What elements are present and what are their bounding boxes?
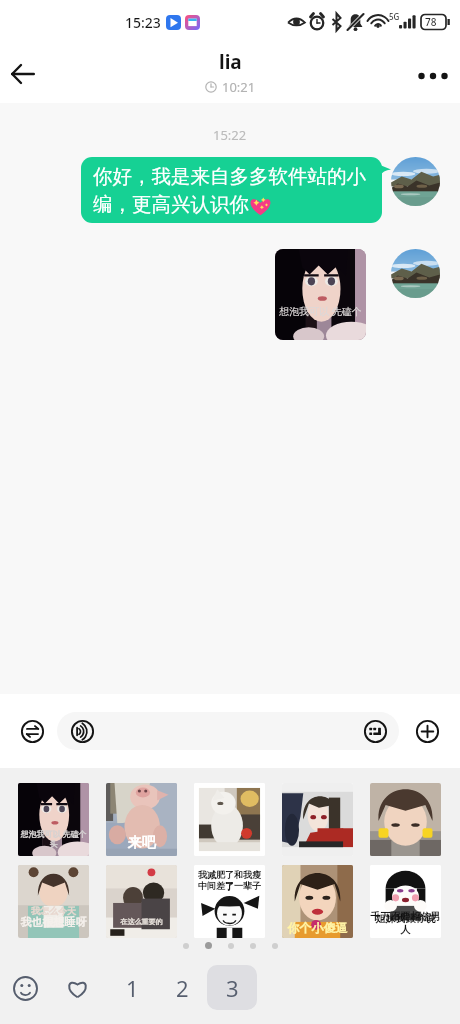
- staticText: [370, 845, 441, 856]
- button[interactable]: 在这么重要的: [106, 865, 177, 938]
- staticText: 3: [226, 973, 239, 1003]
- button[interactable]: 来吧: [106, 783, 177, 856]
- staticText: 15:23: [125, 13, 161, 32]
- button[interactable]: 我怎么今天: [18, 865, 89, 938]
- staticText: 想泡我可以 先磕个头: [18, 828, 89, 849]
- staticText: 我怎么今天: [18, 905, 89, 916]
- staticText: 5G: [389, 11, 400, 22]
- button[interactable]: Favorites tab: [55, 966, 99, 1010]
- button[interactable]: [370, 783, 441, 856]
- staticText: 我减肥了和我瘦了: [194, 869, 265, 893]
- staticText: 你个小傻逼: [282, 920, 353, 935]
- staticText: 1: [126, 973, 139, 1003]
- button[interactable]: 想泡我可以 先磕个头: [275, 249, 366, 340]
- button[interactable]: Back: [0, 51, 46, 97]
- button[interactable]: Emoji tab: [3, 966, 47, 1010]
- button[interactable]: [282, 783, 353, 856]
- staticText: lia: [219, 49, 242, 75]
- staticText: 姐妹我跟你说: [370, 912, 441, 925]
- button[interactable]: [57, 712, 399, 750]
- staticText: 78: [425, 15, 437, 29]
- button[interactable]: 姐妹我跟你说: [370, 865, 441, 938]
- button[interactable]: 1: [107, 965, 157, 1010]
- button[interactable]: 你个小傻逼: [282, 865, 353, 938]
- button[interactable]: 3: [207, 965, 257, 1010]
- button[interactable]: [391, 249, 440, 298]
- staticText: 编，更高兴认识你: [93, 192, 249, 217]
- button[interactable]: 你好，我是来自多多软件站的小: [81, 157, 382, 223]
- button[interactable]: More options: [409, 50, 457, 98]
- staticText: 想泡我可以 先磕个头: [275, 304, 366, 318]
- button[interactable]: Switch input mode: [16, 715, 48, 747]
- staticText: 你好，我是来自多多软件站的小: [93, 164, 366, 189]
- staticText: 15:22: [213, 126, 247, 144]
- button[interactable]: [194, 783, 265, 856]
- button[interactable]: 想泡我可以 先磕个头: [18, 783, 89, 856]
- staticText: 在这么重要的: [106, 917, 177, 926]
- button[interactable]: Emoji: [359, 715, 391, 747]
- staticText: 来吧: [106, 834, 177, 852]
- button[interactable]: 我减肥了和我瘦了: [194, 865, 265, 938]
- button[interactable]: Add attachment: [411, 715, 443, 747]
- button[interactable]: [391, 157, 440, 206]
- button[interactable]: 2: [157, 965, 207, 1010]
- staticText: 2: [176, 973, 189, 1003]
- staticText: 10:21: [222, 78, 256, 96]
- button[interactable]: Voice message: [66, 715, 98, 747]
- staticText: 我也很想睡呀: [18, 915, 89, 929]
- staticText: 千万不要相信男人: [370, 910, 441, 936]
- staticText: 中间差了一辈子: [194, 880, 265, 891]
